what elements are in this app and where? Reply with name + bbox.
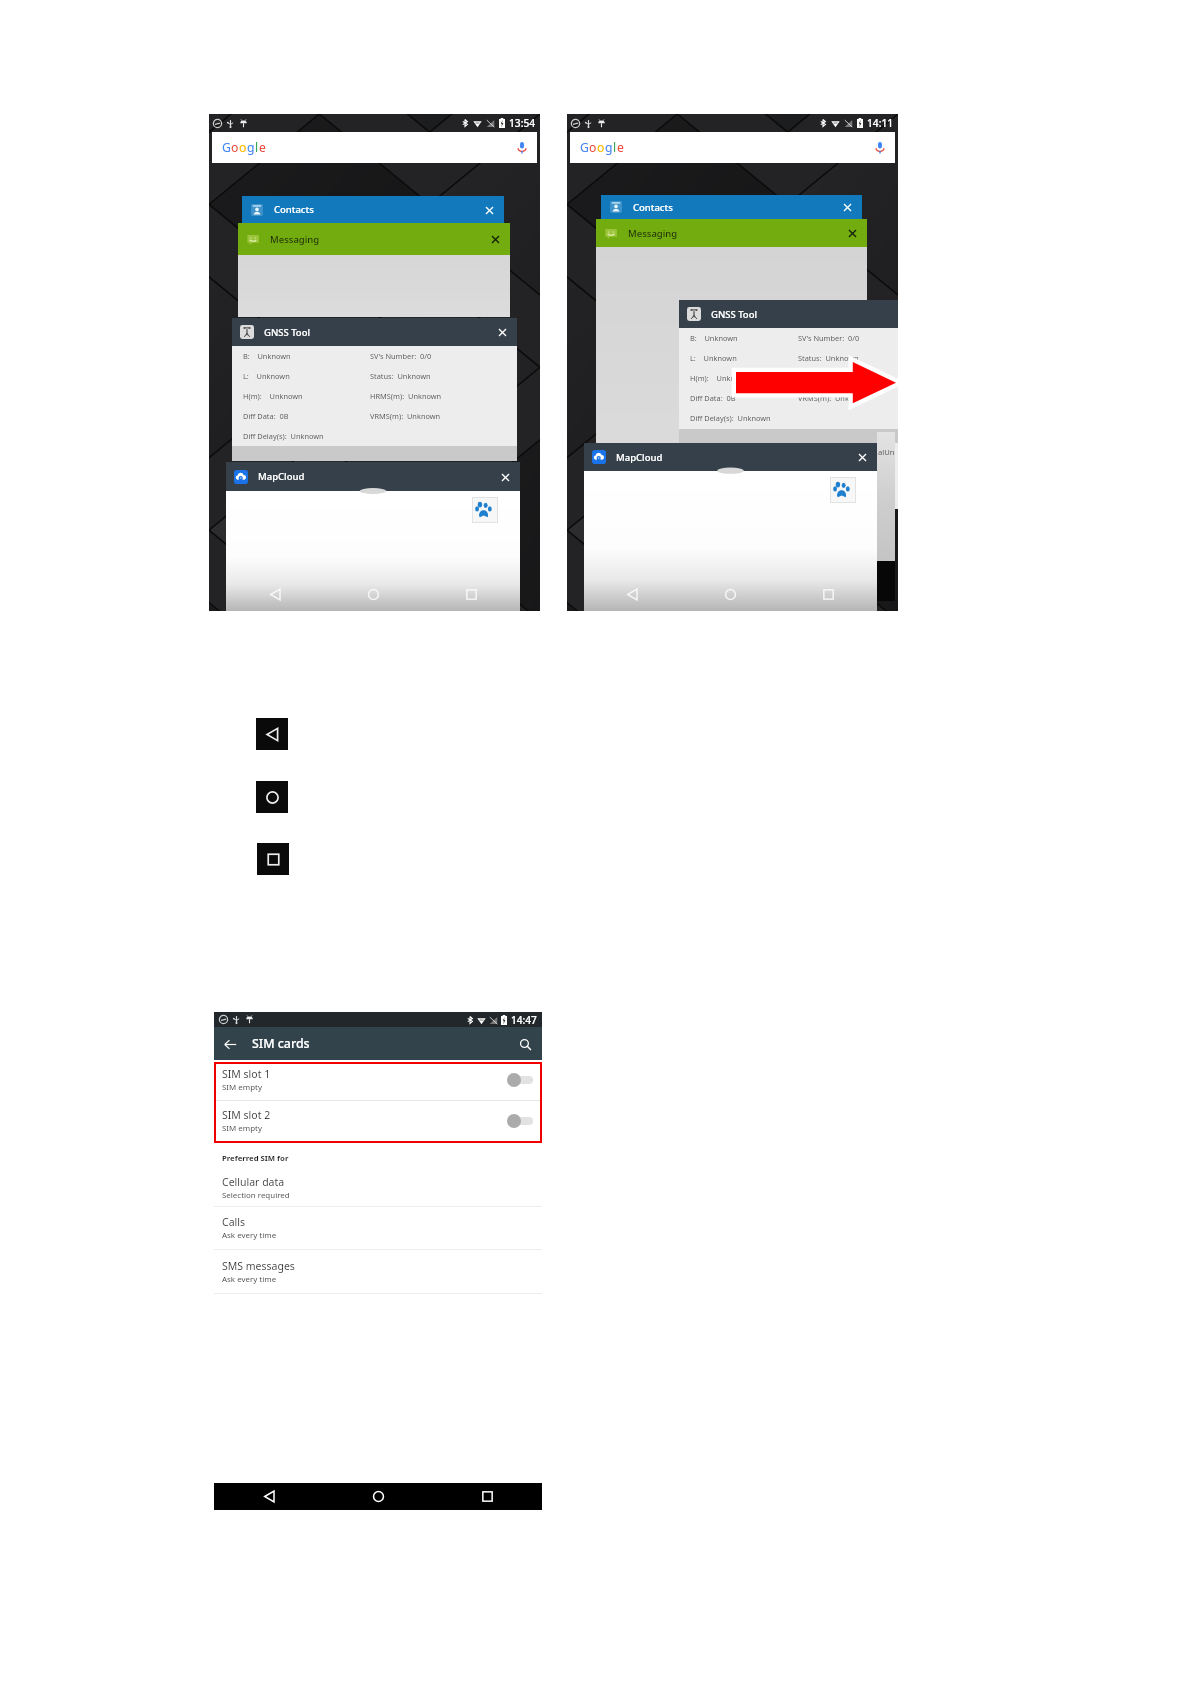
button[interactable]: Navigate up <box>220 1034 240 1054</box>
staticText: e <box>617 139 624 156</box>
staticText: Cellular data <box>222 1175 285 1189</box>
button[interactable]: MapCloud <box>584 443 877 471</box>
button[interactable]: Close MapCloud <box>497 469 513 485</box>
staticText: Ask every time <box>222 1230 277 1241</box>
staticText: SMS messages <box>222 1259 295 1273</box>
button[interactable]: SIM slot 1 <box>214 1060 542 1100</box>
staticText: Messaging <box>628 227 678 240</box>
staticText: B: Unknown <box>690 333 798 343</box>
staticText: G <box>222 139 231 156</box>
button[interactable]: Messaging <box>596 219 867 247</box>
staticText: SIM empty <box>222 1082 262 1093</box>
button[interactable]: G <box>212 132 537 163</box>
staticText: HRMS(m): Unknown <box>370 391 513 401</box>
staticText: SV's Number: 0/0 <box>798 333 898 343</box>
staticText: Preferred SIM for <box>222 1153 289 1164</box>
staticText: SIM empty <box>222 1123 262 1134</box>
button[interactable]: SIM slot 2 <box>214 1101 542 1141</box>
staticText: VRMS(m): Unknown <box>370 411 513 421</box>
staticText: Diff Delay(s): Unknown <box>690 413 798 423</box>
staticText: g <box>247 139 255 156</box>
staticText: H(m): Unknown <box>243 391 370 401</box>
staticText: Selection required <box>222 1190 290 1201</box>
staticText: H(m): Unknown <box>690 373 798 383</box>
staticText: Calls <box>222 1215 245 1229</box>
staticText: e <box>259 139 266 156</box>
staticText: Diff Data: 0B <box>243 411 370 421</box>
staticText: Diff Data: 0B <box>690 393 798 403</box>
staticText: L: Unknown <box>690 353 798 363</box>
staticText: 14:11 <box>867 116 894 130</box>
button[interactable]: Home <box>324 1483 433 1510</box>
staticText: VRMS(m): Unknown <box>798 393 898 403</box>
button[interactable]: Close GNSS Tool <box>494 324 510 340</box>
staticText: 13:54 <box>509 116 536 130</box>
button[interactable]: G <box>570 132 895 163</box>
button[interactable]: Close Contacts <box>839 199 855 215</box>
button[interactable]: Calls <box>214 1207 542 1249</box>
staticText: SV's Number: 0/0 <box>370 351 513 361</box>
button[interactable]: Close MapCloud <box>854 449 870 465</box>
button[interactable]: Back <box>214 1483 324 1510</box>
staticText: SIM cards <box>252 1035 310 1052</box>
button[interactable]: Recent apps <box>433 1483 542 1510</box>
staticText: Contacts <box>633 201 673 214</box>
staticText: Status: Unknown <box>798 353 898 363</box>
button[interactable]: SMS messages <box>214 1250 542 1293</box>
staticText: o <box>597 139 605 156</box>
staticText: Ask every time <box>222 1274 277 1285</box>
staticText: G <box>580 139 589 156</box>
staticText: alUn <box>878 447 895 457</box>
staticText: SIM slot 2 <box>222 1108 271 1122</box>
staticText: o <box>239 139 247 156</box>
staticText: GNSS Tool <box>711 308 758 321</box>
staticText: B: Unknown <box>243 351 370 361</box>
button[interactable]: Back <box>226 577 324 611</box>
staticText: SIM slot 1 <box>222 1067 271 1081</box>
staticText: Messaging <box>270 233 320 246</box>
button[interactable]: GNSS Tool <box>679 300 898 328</box>
button[interactable]: Recent apps <box>422 577 520 611</box>
button[interactable]: Cellular data <box>214 1170 542 1206</box>
staticText: g <box>605 139 613 156</box>
button[interactable]: Back <box>584 577 681 611</box>
button[interactable]: Close Contacts <box>481 202 497 218</box>
button[interactable]: Contacts <box>242 196 504 223</box>
staticText: MapCloud <box>616 451 663 464</box>
staticText: l <box>255 139 259 156</box>
button[interactable]: SIM slot 2 toggle <box>507 1114 533 1128</box>
button[interactable]: Close Messaging <box>844 225 860 241</box>
button[interactable]: SIM slot 1 toggle <box>507 1073 533 1087</box>
button[interactable]: Contacts <box>601 195 862 219</box>
button[interactable]: Close Messaging <box>487 231 503 247</box>
staticText: L: Unknown <box>243 371 370 381</box>
button[interactable]: Home <box>681 577 779 611</box>
button[interactable]: Search <box>516 1035 534 1053</box>
staticText: l <box>613 139 617 156</box>
button[interactable]: Recent apps <box>779 577 877 611</box>
staticText: o <box>231 139 239 156</box>
staticText: HRMS(m): Unknown <box>798 373 898 383</box>
staticText: o <box>589 139 597 156</box>
button[interactable]: MapCloud <box>226 462 520 491</box>
staticText: GNSS Tool <box>264 326 311 339</box>
button[interactable]: GNSS Tool <box>232 318 517 346</box>
staticText: 14:47 <box>511 1013 537 1027</box>
staticText: Status: Unknown <box>370 371 513 381</box>
button[interactable]: Home <box>324 577 422 611</box>
button[interactable]: Messaging <box>238 223 510 255</box>
staticText: Contacts <box>274 203 314 216</box>
staticText: Diff Delay(s): Unknown <box>243 431 370 441</box>
staticText: MapCloud <box>258 470 305 483</box>
